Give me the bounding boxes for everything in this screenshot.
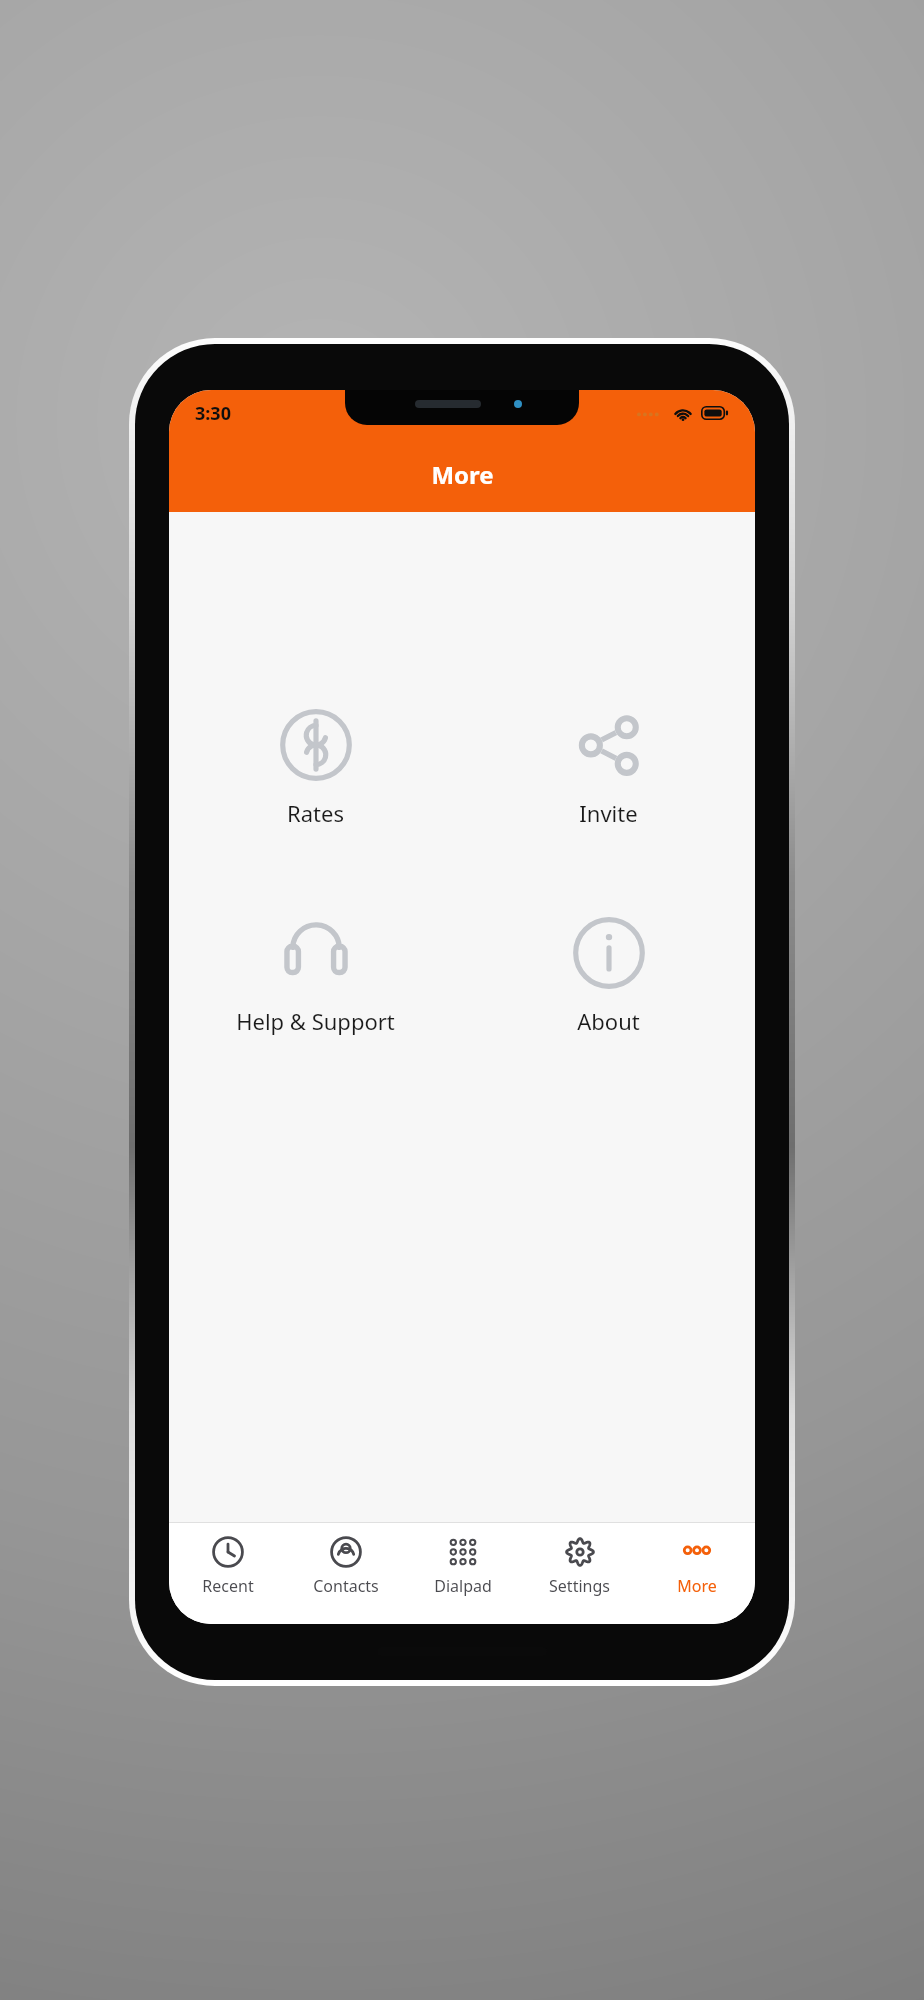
button[interactable]: Contacts [287, 1522, 404, 1624]
staticText: About [577, 1006, 640, 1036]
staticText: Rates [287, 798, 344, 828]
staticText: Contacts [313, 1575, 379, 1597]
staticText: Recent [202, 1575, 254, 1597]
staticText: Help & Support [236, 1006, 395, 1036]
button[interactable]: Settings [521, 1522, 638, 1624]
button[interactable]: Invite [462, 704, 755, 832]
button[interactable]: Recent [169, 1522, 287, 1624]
button[interactable]: Dialpad [404, 1522, 521, 1624]
button[interactable]: About [462, 912, 755, 1040]
staticText: 3:30 [195, 401, 231, 426]
other: Recent [211, 1535, 245, 1569]
button[interactable]: More [638, 1522, 755, 1624]
other: Settings [563, 1535, 597, 1569]
button[interactable]: Help & Support [169, 912, 462, 1040]
other: Dialpad [446, 1535, 480, 1569]
other: Contacts [329, 1535, 363, 1569]
staticText: More [431, 458, 494, 491]
staticText: Dialpad [434, 1575, 492, 1597]
staticText: Settings [549, 1575, 610, 1597]
other: More [680, 1535, 714, 1569]
staticText: Invite [579, 798, 638, 828]
button[interactable]: Rates [169, 704, 462, 832]
staticText: More [677, 1575, 717, 1597]
